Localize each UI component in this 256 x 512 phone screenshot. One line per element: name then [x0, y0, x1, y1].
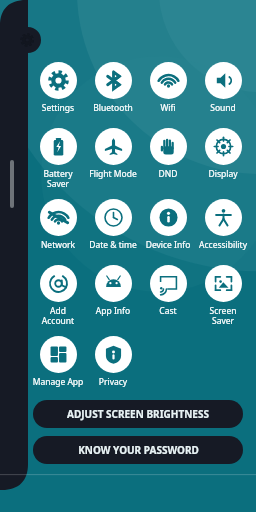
button[interactable]: Device Info — [141, 199, 195, 251]
staticText: Display — [196, 168, 250, 180]
button[interactable]: Cast — [141, 265, 195, 317]
staticText: Battery Saver — [31, 168, 85, 189]
staticText: Screen Saver — [196, 305, 250, 326]
staticText: Network — [31, 239, 85, 251]
staticText: Cast — [141, 305, 195, 317]
button[interactable]: Wifi — [141, 62, 195, 114]
button[interactable]: Sound — [196, 62, 250, 114]
button[interactable]: Manage App — [31, 336, 85, 388]
staticText: Bluetooth — [86, 102, 140, 114]
button[interactable]: Display — [196, 128, 250, 180]
staticText: Privacy — [86, 376, 140, 388]
staticText: Sound — [196, 102, 250, 114]
button[interactable]: Screen Saver — [196, 265, 250, 326]
staticText: Manage App — [31, 376, 85, 388]
staticText: Device Info — [141, 239, 195, 251]
staticText: Add Account — [31, 305, 85, 326]
button[interactable]: DND — [141, 128, 195, 180]
button[interactable]: Privacy — [86, 336, 140, 388]
button[interactable]: KNOW YOUR PASSWORD — [33, 436, 243, 464]
staticText: DND — [141, 168, 195, 180]
button[interactable]: Accessibility — [196, 199, 250, 251]
staticText: KNOW YOUR PASSWORD — [78, 443, 199, 457]
button[interactable]: ADJUST SCREEN BRIGHTNESS — [33, 400, 243, 428]
staticText: Accessibility — [196, 239, 250, 251]
button[interactable]: App Info — [86, 265, 140, 317]
staticText: Wifi — [141, 102, 195, 114]
button[interactable]: Bluetooth — [86, 62, 140, 114]
button[interactable]: Flight Mode — [86, 128, 140, 180]
button[interactable]: Date & time — [86, 199, 140, 251]
staticText: Settings — [31, 102, 85, 114]
staticText: App Info — [86, 305, 140, 317]
staticText: ADJUST SCREEN BRIGHTNESS — [67, 407, 209, 421]
button[interactable]: Settings — [31, 62, 85, 114]
button[interactable]: Battery Saver — [31, 128, 85, 189]
staticText: Date & time — [86, 239, 140, 251]
button[interactable]: Network — [31, 199, 85, 251]
staticText: Flight Mode — [86, 168, 140, 180]
button[interactable]: Add Account — [31, 265, 85, 326]
